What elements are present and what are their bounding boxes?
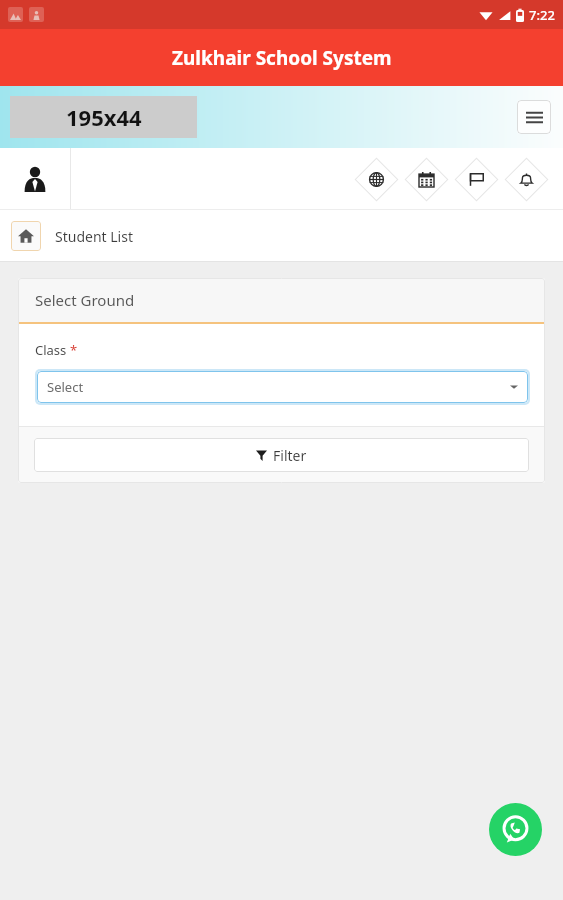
button[interactable]: Filter xyxy=(34,438,529,472)
button[interactable]: Calendar xyxy=(401,154,451,204)
staticText: Select Ground xyxy=(35,290,135,310)
staticText: 195x44 xyxy=(66,102,142,132)
staticText: * xyxy=(70,341,78,359)
staticText: Select xyxy=(47,378,84,396)
staticText: Student List xyxy=(55,227,133,246)
button[interactable]: WhatsApp xyxy=(489,803,542,856)
staticText: Class xyxy=(35,341,67,359)
button[interactable]: Notifications xyxy=(501,154,551,204)
button[interactable]: Select xyxy=(37,371,528,403)
button[interactable]: Menu xyxy=(517,100,551,134)
button[interactable]: Language xyxy=(351,154,401,204)
button[interactable]: Messages xyxy=(451,154,501,204)
staticText: Zulkhair School System xyxy=(172,45,392,71)
staticText: 7:22 xyxy=(529,6,555,24)
button[interactable]: Profile xyxy=(0,148,70,210)
staticText: Filter xyxy=(273,446,307,465)
button[interactable]: Student List xyxy=(11,221,133,251)
button[interactable]: 195x44 xyxy=(10,96,197,138)
